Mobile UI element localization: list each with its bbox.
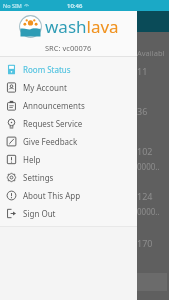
button[interactable]: My Account xyxy=(0,78,137,96)
staticText: Help xyxy=(23,154,41,165)
staticText: 10:46 xyxy=(67,2,83,10)
button[interactable]: Sign Out xyxy=(0,204,137,222)
staticText: 170 xyxy=(137,237,153,249)
staticText: 11 xyxy=(137,65,148,77)
staticText: My Account xyxy=(23,82,67,93)
button[interactable]: Room Status xyxy=(0,60,137,78)
other: Settings xyxy=(6,172,17,183)
other: Announcements xyxy=(6,100,17,111)
staticText: No SIM xyxy=(3,2,22,9)
staticText: 0000.. xyxy=(137,206,160,217)
other: Room Status xyxy=(6,64,17,75)
other: Sign Out xyxy=(6,208,17,219)
staticText: Available xyxy=(137,48,167,58)
other: My Account xyxy=(6,82,17,93)
button[interactable]: Settings xyxy=(0,168,137,186)
staticText: SRC: vc00076 xyxy=(45,43,92,53)
staticText: Room Status xyxy=(23,64,71,75)
other: Give Feedback xyxy=(6,136,17,147)
button[interactable]: About This App xyxy=(0,186,137,204)
staticText: Announcements xyxy=(23,100,85,111)
staticText: washlava xyxy=(45,15,119,38)
staticText: About This App xyxy=(23,190,81,201)
staticText: 102 xyxy=(137,145,153,157)
button[interactable]: Request Service xyxy=(0,114,137,132)
button[interactable]: Help xyxy=(0,150,137,168)
staticText: 36 xyxy=(137,105,148,117)
other: Help xyxy=(6,154,17,165)
staticText: 124 xyxy=(137,190,153,202)
other: Request Service xyxy=(6,118,17,129)
other: About This App xyxy=(6,190,17,201)
staticText: Sign Out xyxy=(23,208,56,219)
staticText: Request Service xyxy=(23,118,83,129)
staticText: Give Feedback xyxy=(23,136,78,147)
button[interactable]: Announcements xyxy=(0,96,137,114)
staticText: 0000.. xyxy=(137,161,160,172)
staticText: Settings xyxy=(23,172,54,183)
button[interactable]: Give Feedback xyxy=(0,132,137,150)
